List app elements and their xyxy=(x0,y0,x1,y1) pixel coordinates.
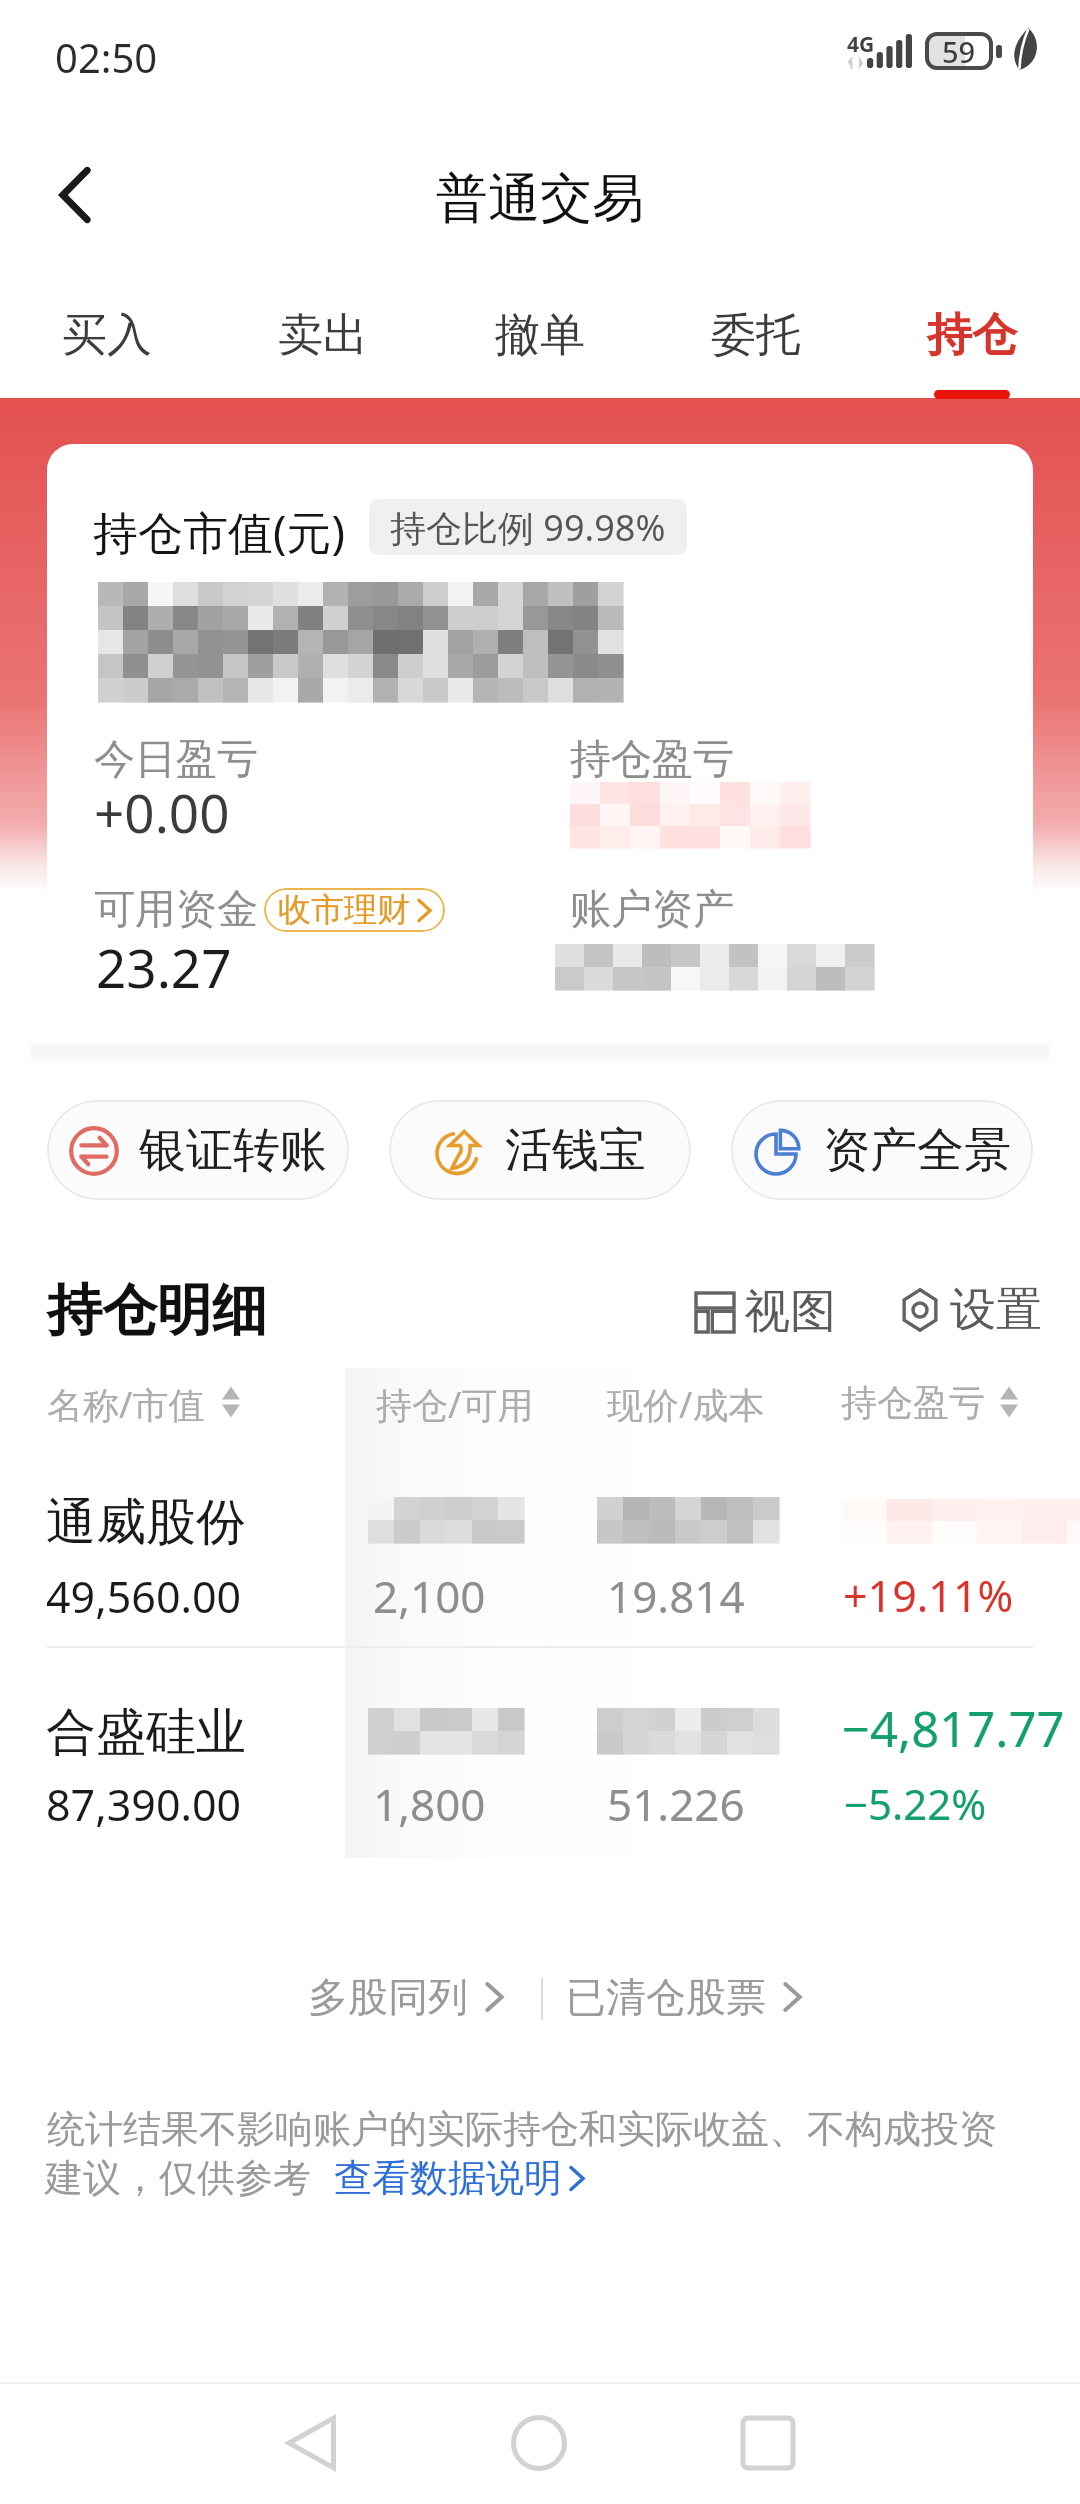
staticText: 收市理财 xyxy=(278,889,410,931)
staticText: 49,560.00 xyxy=(46,1567,242,1626)
button[interactable]: 多股同列 xyxy=(308,1972,504,2022)
staticText: 4G xyxy=(847,30,875,59)
button[interactable]: 委托 xyxy=(656,307,856,397)
staticText: 02:50 xyxy=(55,30,158,84)
staticText: 19.814 xyxy=(607,1566,745,1626)
button[interactable] xyxy=(0,1647,1080,1847)
staticText: 51.226 xyxy=(607,1774,745,1834)
staticText: 普通交易 xyxy=(436,166,644,232)
button[interactable]: 持仓市值(元) xyxy=(47,444,1033,1043)
button[interactable]: 设置 xyxy=(900,1281,1042,1339)
button[interactable] xyxy=(0,1446,1080,1646)
button[interactable]: Back xyxy=(251,2381,371,2504)
staticText: 23.27 xyxy=(96,931,232,1003)
staticText: 持仓比例 99.98% xyxy=(390,503,666,552)
button[interactable]: Home xyxy=(479,2381,599,2504)
button[interactable]: 卖出 xyxy=(223,307,423,397)
button[interactable]: 活钱宝 xyxy=(389,1100,691,1200)
staticText: 委托 xyxy=(711,307,801,364)
staticText: 撤单 xyxy=(495,307,585,364)
button[interactable]: 资产全景 xyxy=(731,1100,1033,1200)
staticText: 87,390.00 xyxy=(46,1775,242,1834)
staticText: −5.22% xyxy=(844,1775,987,1832)
staticText: +19.11% xyxy=(843,1566,1014,1625)
staticText: +0.00 xyxy=(94,776,230,848)
button[interactable]: 撤单 xyxy=(440,307,640,397)
button[interactable]: 银证转账 xyxy=(47,1100,349,1200)
button[interactable]: Back xyxy=(20,140,130,250)
staticText: 名称/市值 xyxy=(47,1380,205,1429)
staticText: 持仓明细 xyxy=(47,1276,267,1345)
staticText: 可用资金 xyxy=(94,884,258,936)
staticText: 设置 xyxy=(950,1281,1042,1339)
staticText: 1,800 xyxy=(373,1774,486,1834)
button[interactable]: 已清仓股票 xyxy=(566,1972,802,2022)
staticText: 持仓盈亏 xyxy=(841,1380,985,1425)
staticText: 统计结果不影响账户的实际持仓和实际收益、不构成投资 xyxy=(47,2105,997,2153)
button[interactable]: 持仓 xyxy=(872,307,1072,397)
staticText: 2,100 xyxy=(373,1566,486,1626)
button[interactable]: Recents xyxy=(708,2381,828,2504)
staticText: 现价/成本 xyxy=(607,1380,765,1429)
staticText: 活钱宝 xyxy=(505,1121,646,1180)
staticText: 视图 xyxy=(744,1283,836,1341)
staticText: 已清仓股票 xyxy=(566,1972,766,2022)
staticText: 持仓市值(元) xyxy=(93,501,346,562)
staticText: 今日盈亏 xyxy=(94,734,258,786)
staticText: 查看数据说明 xyxy=(334,2154,562,2202)
button[interactable]: 查看数据说明 xyxy=(334,2154,585,2202)
staticText: −4,817.77 xyxy=(842,1695,1065,1762)
staticText: 资产全景 xyxy=(823,1121,1011,1180)
staticText: 银证转账 xyxy=(139,1121,327,1180)
staticText: 持仓盈亏 xyxy=(570,734,734,786)
staticText: 通威股份 xyxy=(46,1491,246,1554)
button[interactable]: 收市理财 xyxy=(264,888,445,932)
staticText: 买入 xyxy=(62,307,152,364)
staticText: 账户资产 xyxy=(570,884,734,936)
button[interactable]: 视图 xyxy=(696,1283,836,1341)
staticText: 持仓/可用 xyxy=(376,1380,534,1429)
staticText: 建议，仅供参考 xyxy=(45,2154,311,2202)
staticText: 多股同列 xyxy=(308,1972,468,2022)
button[interactable]: 买入 xyxy=(7,307,207,397)
staticText: 59 xyxy=(942,32,976,70)
staticText: 持仓 xyxy=(927,307,1017,364)
staticText: 卖出 xyxy=(278,307,368,364)
staticText: 合盛硅业 xyxy=(46,1701,246,1764)
